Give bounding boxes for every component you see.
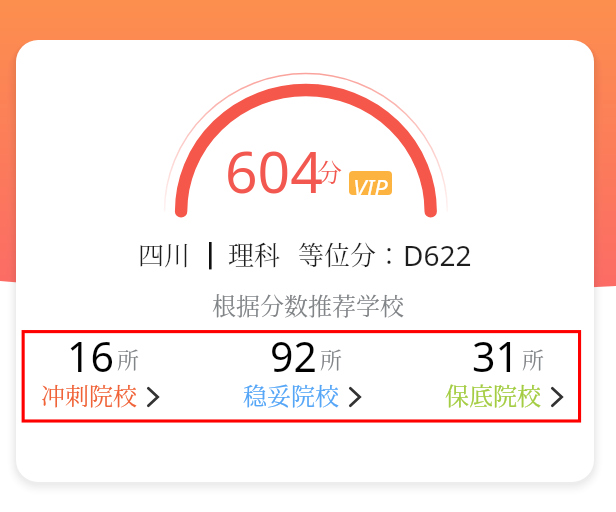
- staticText: 分: [317, 153, 343, 189]
- other: more: [349, 387, 361, 407]
- staticText: D622: [403, 236, 472, 274]
- button[interactable]: 92: [201, 328, 403, 422]
- staticText: 等位分：: [298, 235, 403, 272]
- staticText: 冲刺院校: [41, 377, 137, 411]
- other: more: [551, 387, 563, 407]
- button[interactable]: 31: [403, 328, 605, 422]
- staticText: 92: [270, 328, 317, 384]
- button[interactable]: 16: [0, 328, 201, 422]
- staticText: 稳妥院校: [243, 377, 339, 411]
- staticText: VIP: [353, 171, 388, 195]
- button[interactable]: VIP: [349, 171, 392, 195]
- staticText: 604: [225, 132, 323, 210]
- staticText: 所: [522, 343, 545, 375]
- other: more: [147, 387, 159, 407]
- staticText: 理科: [228, 235, 281, 272]
- staticText: 根据分数推荐学校: [0, 287, 616, 321]
- staticText: 所: [117, 343, 140, 375]
- staticText: 16: [67, 328, 114, 384]
- staticText: 31: [472, 328, 519, 384]
- staticText: 所: [320, 343, 343, 375]
- staticText: 保底院校: [445, 377, 541, 411]
- staticText: 四川: [138, 235, 191, 272]
